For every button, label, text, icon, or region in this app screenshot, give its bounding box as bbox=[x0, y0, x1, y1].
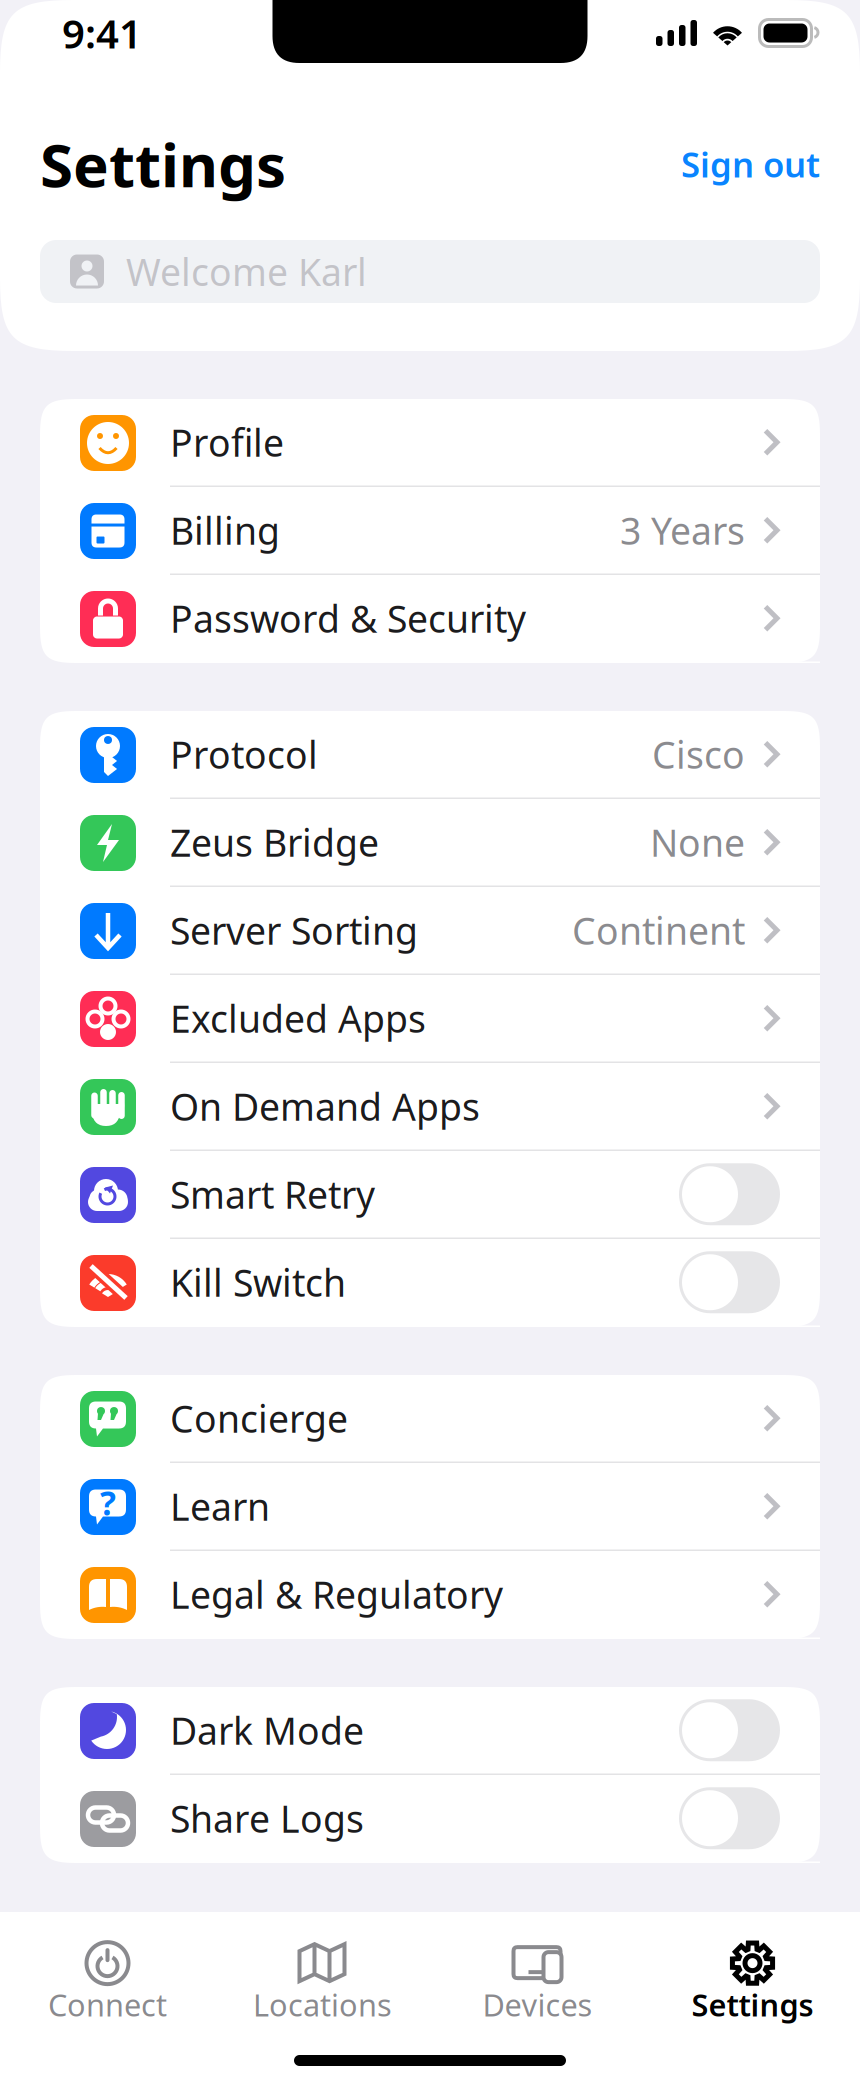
button[interactable]: Smart Retry bbox=[40, 1151, 820, 1239]
staticText: Devices bbox=[482, 1984, 592, 2025]
staticText: Locations bbox=[253, 1984, 392, 2025]
button[interactable]: Profile bbox=[40, 399, 820, 487]
staticText: Profile bbox=[170, 417, 284, 467]
button[interactable]: Protocol bbox=[40, 711, 820, 799]
button[interactable]: Password & Security bbox=[40, 575, 820, 663]
staticText: 9:41 bbox=[62, 6, 142, 59]
staticText: Smart Retry bbox=[170, 1169, 375, 1219]
staticText: Welcome Karl bbox=[126, 247, 367, 296]
staticText: Dark Mode bbox=[170, 1705, 364, 1755]
button[interactable]: Server Sorting bbox=[40, 887, 820, 975]
staticText: Settings bbox=[40, 124, 286, 204]
staticText: Cisco bbox=[652, 729, 745, 779]
staticText: Legal & Regulatory bbox=[170, 1569, 503, 1619]
button[interactable]: Connect bbox=[0, 1932, 215, 2032]
staticText: Connect bbox=[48, 1984, 167, 2025]
staticText: None bbox=[650, 817, 745, 867]
staticText: Billing bbox=[170, 505, 280, 555]
button[interactable]: Dark Mode bbox=[40, 1687, 820, 1775]
staticText: ? bbox=[100, 1480, 116, 1525]
staticText: Server Sorting bbox=[170, 905, 418, 955]
button[interactable]: ? bbox=[40, 1463, 820, 1551]
staticText: Protocol bbox=[170, 729, 318, 779]
staticText: Learn bbox=[170, 1481, 270, 1531]
button[interactable]: Zeus Bridge bbox=[40, 799, 820, 887]
button[interactable]: Legal & Regulatory bbox=[40, 1551, 820, 1639]
staticText: 3 Years bbox=[620, 505, 745, 555]
button[interactable]: Excluded Apps bbox=[40, 975, 820, 1063]
staticText: Settings bbox=[691, 1984, 813, 2025]
button[interactable]: Devices bbox=[430, 1932, 645, 2032]
staticText: Kill Switch bbox=[170, 1257, 346, 1307]
staticText: Password & Security bbox=[170, 593, 526, 643]
button[interactable]: Share Logs bbox=[40, 1775, 820, 1863]
staticText: Concierge bbox=[170, 1393, 348, 1443]
button[interactable]: Kill Switch bbox=[40, 1239, 820, 1327]
staticText: Sign out bbox=[681, 141, 820, 187]
staticText: Excluded Apps bbox=[170, 993, 426, 1043]
staticText: Continent bbox=[572, 905, 745, 955]
staticText: Zeus Bridge bbox=[170, 817, 379, 867]
button[interactable]: Locations bbox=[215, 1932, 430, 2032]
button[interactable]: Concierge bbox=[40, 1375, 820, 1463]
button[interactable]: On Demand Apps bbox=[40, 1063, 820, 1151]
button[interactable]: Billing bbox=[40, 487, 820, 575]
button[interactable]: Sign out bbox=[681, 141, 820, 187]
button[interactable]: Settings bbox=[645, 1932, 860, 2032]
staticText: On Demand Apps bbox=[170, 1081, 480, 1131]
staticText: Share Logs bbox=[170, 1793, 364, 1843]
